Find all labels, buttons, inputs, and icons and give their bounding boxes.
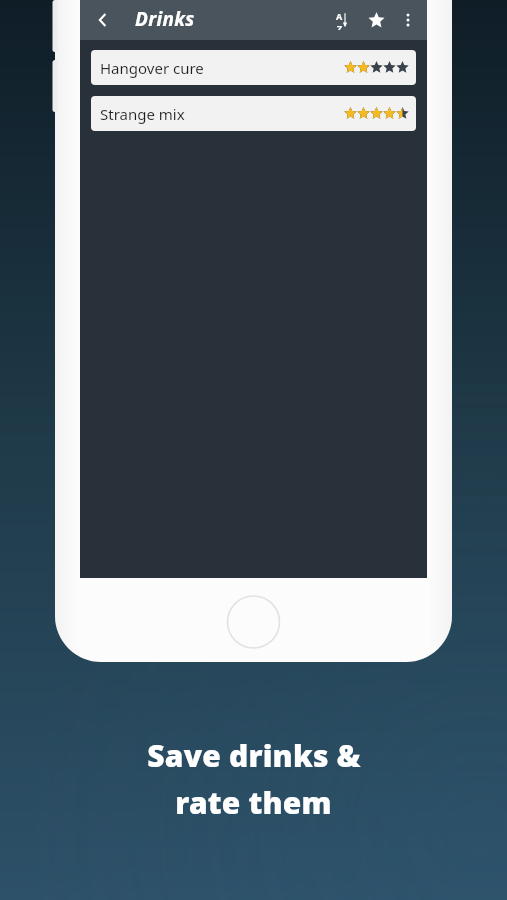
button[interactable]: Favourites: [359, 3, 393, 37]
staticText: Z: [337, 22, 343, 30]
button[interactable]: More options: [393, 5, 423, 35]
staticText: Strange mix: [100, 104, 185, 124]
staticText: Hangover cure: [100, 58, 204, 78]
button[interactable]: Strange mix: [91, 96, 416, 131]
staticText: Save drinks &: [147, 735, 361, 776]
staticText: rate them: [175, 782, 332, 823]
staticText: A: [336, 10, 343, 22]
staticText: Drinks: [135, 6, 195, 32]
button[interactable]: Back: [85, 2, 121, 38]
button[interactable]: Hangover cure: [91, 50, 416, 85]
button[interactable]: Sort alphabetically: [325, 3, 359, 37]
